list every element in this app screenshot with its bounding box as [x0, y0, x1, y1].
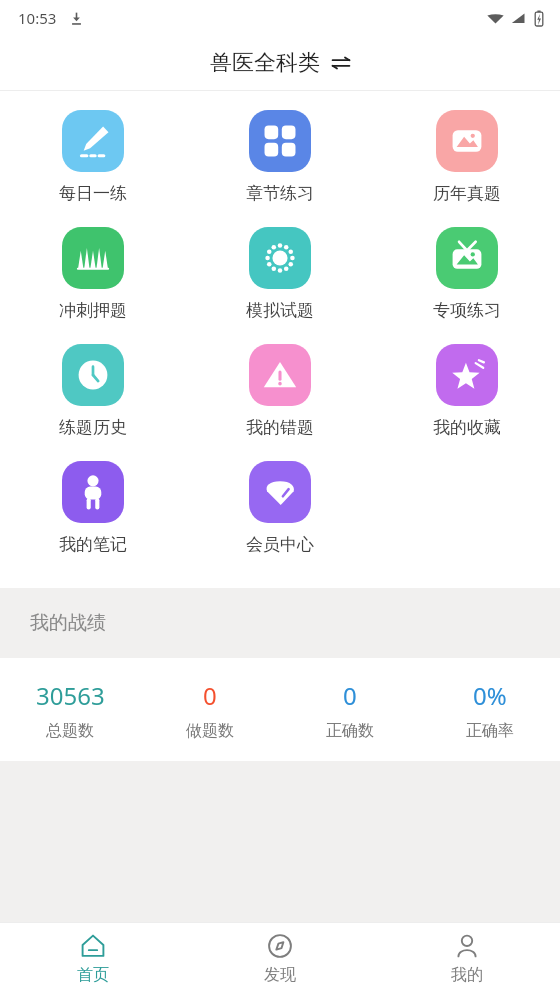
staticText: 0% [473, 679, 507, 712]
button[interactable]: 会员中心 [186, 461, 373, 578]
button[interactable]: 我的笔记 [0, 461, 186, 578]
staticText: 0 [343, 679, 357, 712]
button[interactable]: 模拟试题 [186, 227, 373, 344]
staticText: 我的错题 [246, 417, 314, 438]
staticText: 我的笔记 [59, 534, 127, 555]
button[interactable]: 冲刺押题 [0, 227, 186, 344]
button[interactable]: 我的收藏 [373, 344, 560, 461]
button[interactable]: 我的 [373, 923, 560, 995]
staticText: 我的收藏 [433, 417, 501, 438]
button[interactable]: 我的错题 [186, 344, 373, 461]
staticText: 0 [203, 679, 217, 712]
staticText: 10:53 [18, 8, 57, 28]
button[interactable]: 每日一练 [0, 110, 186, 227]
staticText: 做题数 [186, 721, 234, 741]
staticText: 冲刺押题 [59, 300, 127, 321]
button[interactable]: 专项练习 [373, 227, 560, 344]
staticText: 正确率 [466, 721, 514, 741]
staticText: 每日一练 [59, 183, 127, 204]
staticText: 30563 [36, 679, 105, 712]
button[interactable]: 0 [140, 658, 280, 761]
button[interactable]: 发现 [186, 923, 373, 995]
staticText: 章节练习 [246, 183, 314, 204]
button[interactable]: 30563 [0, 658, 140, 761]
button[interactable]: 兽医全科类 [200, 44, 361, 82]
staticText: 会员中心 [246, 534, 314, 555]
staticText: 模拟试题 [246, 300, 314, 321]
button[interactable]: 练题历史 [0, 344, 186, 461]
staticText: 专项练习 [433, 300, 501, 321]
staticText: 历年真题 [433, 183, 501, 204]
button[interactable]: 0 [280, 658, 420, 761]
staticText: 正确数 [326, 721, 374, 741]
button[interactable]: 章节练习 [186, 110, 373, 227]
other: Switch category [331, 53, 351, 73]
button[interactable]: 0% [420, 658, 560, 761]
button[interactable]: 首页 [0, 923, 186, 995]
staticText: 发现 [264, 965, 296, 985]
staticText: 练题历史 [59, 417, 127, 438]
staticText: 兽医全科类 [210, 49, 320, 77]
button[interactable]: 历年真题 [373, 110, 560, 227]
staticText: 我的 [451, 965, 483, 985]
staticText: 首页 [77, 965, 109, 985]
staticText: 我的战绩 [30, 611, 106, 635]
staticText: 总题数 [46, 721, 94, 741]
